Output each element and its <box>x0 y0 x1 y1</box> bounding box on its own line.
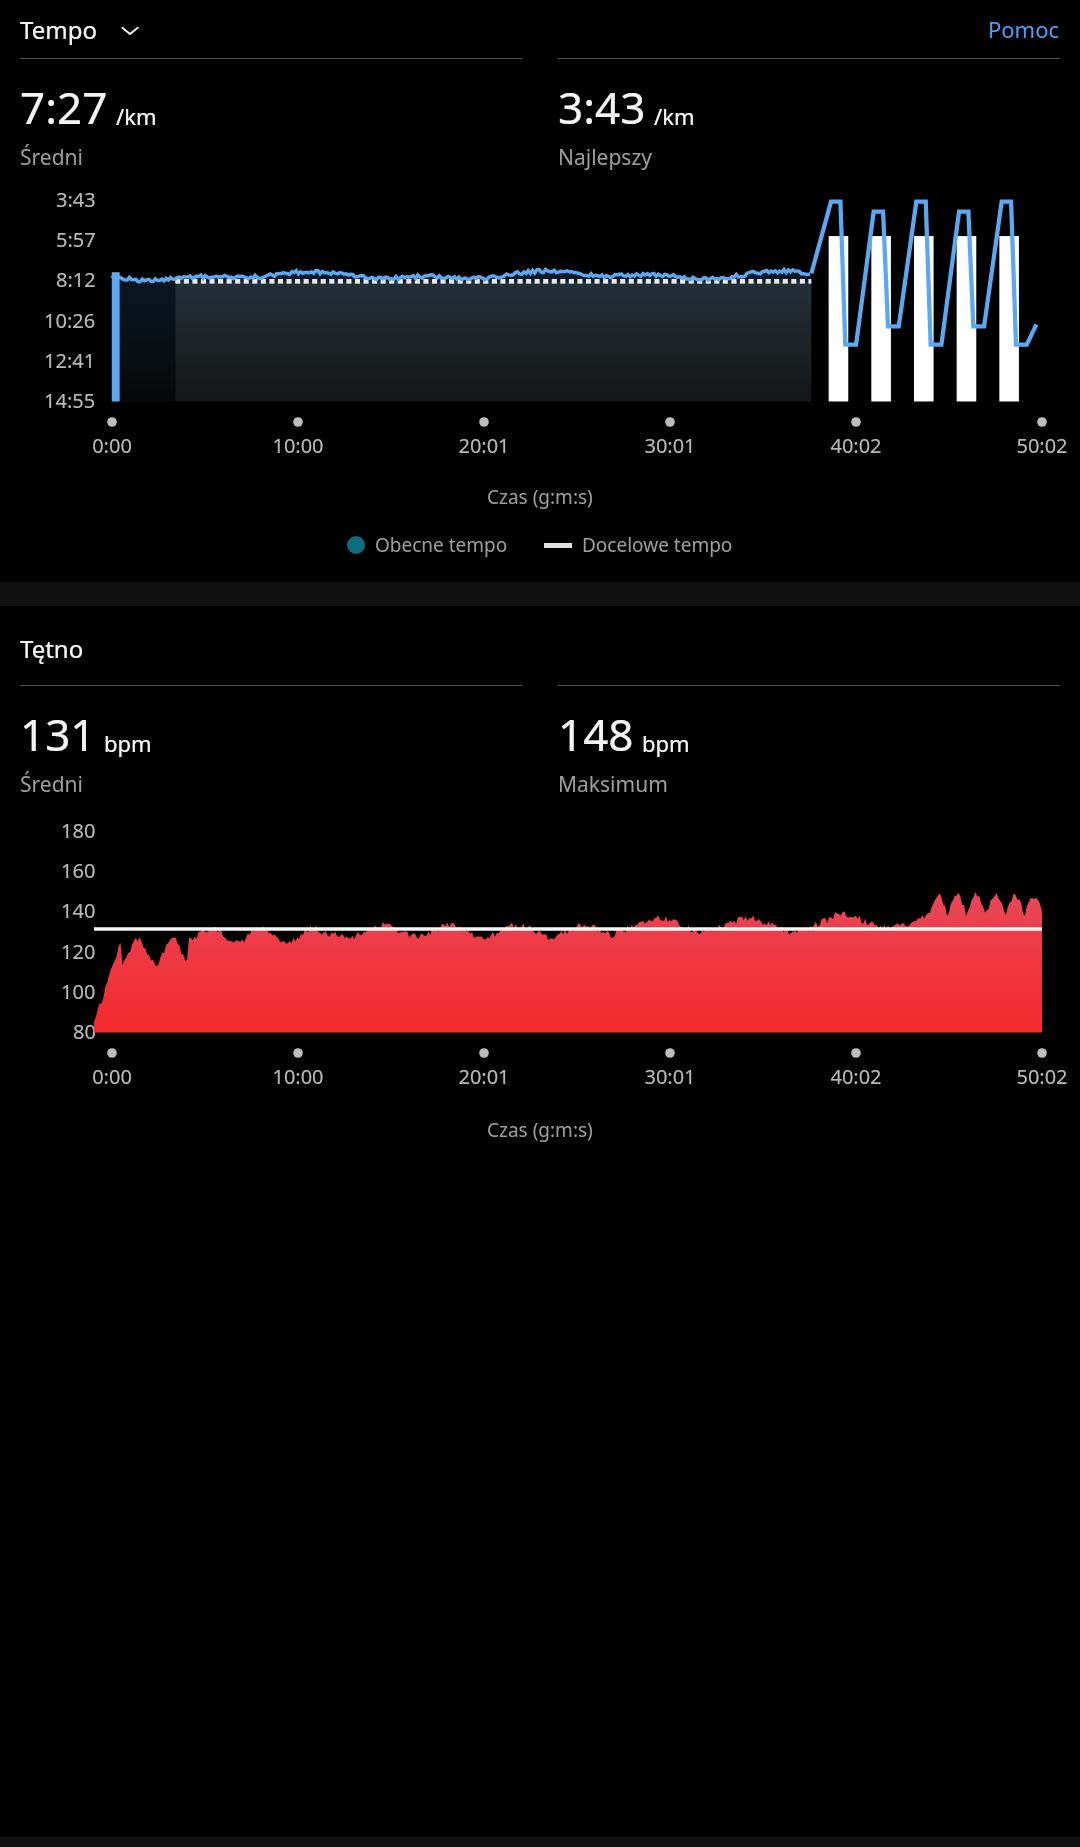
staticText: Tętno <box>20 632 84 665</box>
staticText: 3:43 <box>558 77 646 137</box>
staticText: 30:01 <box>644 1063 696 1090</box>
staticText: 148 <box>558 704 634 764</box>
staticText: bpm <box>642 728 690 758</box>
staticText: Tempo <box>20 13 97 46</box>
staticText: 20:01 <box>458 1063 510 1090</box>
staticText: 100 <box>61 978 96 1005</box>
staticText: Czas (g:m:s) <box>487 1117 593 1143</box>
staticText: Średni <box>20 143 83 172</box>
staticText: 80 <box>73 1018 96 1045</box>
staticText: 120 <box>61 938 96 965</box>
staticText: Obecne tempo <box>375 532 508 558</box>
button[interactable]: Pomoc <box>968 4 1080 54</box>
staticText: Pomoc <box>988 14 1060 44</box>
staticText: 50:02 <box>1016 432 1068 459</box>
staticText: 180 <box>61 817 96 844</box>
staticText: Najlepszy <box>558 143 652 172</box>
staticText: 30:01 <box>644 432 696 459</box>
button[interactable]: 148 <box>558 685 1060 805</box>
staticText: 0:00 <box>92 1063 132 1090</box>
staticText: 0:00 <box>92 432 132 459</box>
staticText: /km <box>116 101 157 131</box>
button[interactable]: 131 <box>20 685 522 805</box>
button[interactable]: 3:43 <box>558 58 1060 178</box>
staticText: /km <box>654 101 695 131</box>
staticText: 12:41 <box>44 347 96 374</box>
staticText: 140 <box>61 897 96 924</box>
staticText: 10:26 <box>44 307 96 334</box>
staticText: Czas (g:m:s) <box>487 484 593 510</box>
staticText: Docelowe tempo <box>582 532 733 558</box>
staticText: Średni <box>20 770 83 799</box>
button[interactable]: 7:27 <box>20 58 522 178</box>
staticText: 160 <box>61 857 96 884</box>
other: Choose metric <box>119 19 141 41</box>
staticText: 5:57 <box>56 226 96 253</box>
staticText: 40:02 <box>830 1063 882 1090</box>
staticText: 10:00 <box>272 432 324 459</box>
staticText: 50:02 <box>1016 1063 1068 1090</box>
staticText: 40:02 <box>830 432 882 459</box>
staticText: 8:12 <box>56 266 96 293</box>
staticText: 14:55 <box>44 387 96 414</box>
staticText: bpm <box>104 728 152 758</box>
staticText: 10:00 <box>272 1063 324 1090</box>
button[interactable]: Tempo <box>0 7 155 52</box>
staticText: 3:43 <box>56 186 96 213</box>
staticText: 7:27 <box>20 77 108 137</box>
staticText: 20:01 <box>458 432 510 459</box>
staticText: 131 <box>20 704 96 764</box>
staticText: Maksimum <box>558 770 668 799</box>
